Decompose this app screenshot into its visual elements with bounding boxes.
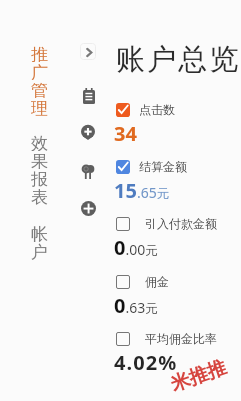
staticText: 推: [31, 44, 48, 62]
staticText: 34: [114, 120, 137, 147]
staticText: 帐: [31, 224, 48, 242]
staticText: 米推推: [168, 355, 229, 397]
button[interactable]: 推: [30, 44, 48, 116]
staticText: 佣金: [145, 274, 169, 289]
staticText: 广: [31, 62, 48, 80]
staticText: 平均佣金比率: [145, 331, 217, 346]
staticText: 15.65元: [114, 177, 170, 204]
staticText: 点击数: [139, 102, 175, 117]
button[interactable]: 帐: [30, 224, 48, 260]
staticText: 结算金额: [139, 159, 187, 174]
staticText: 效: [31, 133, 48, 151]
staticText: 0.00元: [114, 234, 158, 261]
button[interactable]: 效: [30, 133, 48, 205]
staticText: 理: [31, 98, 48, 116]
staticText: 报: [31, 169, 48, 187]
staticText: 户: [31, 242, 48, 260]
button[interactable]: Plans: [83, 88, 95, 104]
button[interactable]: 结算金额: [112, 155, 241, 207]
staticText: 账户总览: [116, 41, 241, 78]
staticText: 引入付款金额: [145, 216, 217, 231]
staticText: 果: [31, 151, 48, 169]
staticText: 表: [31, 187, 48, 205]
button[interactable]: Add: [81, 201, 96, 216]
button[interactable]: Add location: [81, 125, 95, 140]
staticText: 0.63元: [114, 292, 158, 319]
button[interactable]: 引入付款金额: [112, 212, 241, 264]
button[interactable]: 佣金: [112, 270, 241, 322]
button[interactable]: 平均佣金比率: [112, 327, 241, 379]
staticText: 4.02%: [114, 349, 178, 376]
button[interactable]: Expand menu: [80, 43, 96, 60]
button[interactable]: Promote: [82, 164, 94, 179]
button[interactable]: 点击数: [112, 98, 241, 150]
staticText: 管: [31, 80, 48, 98]
